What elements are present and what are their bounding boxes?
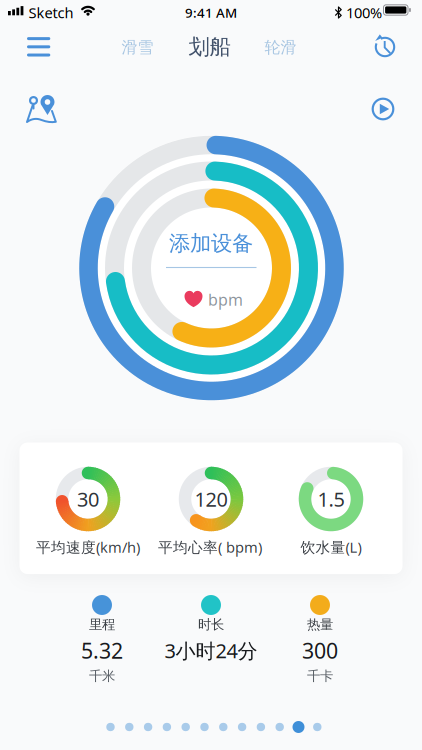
staticText: 轮滑 <box>264 38 296 57</box>
staticText: 饮水量(L) <box>300 537 361 557</box>
staticText: 滑雪 <box>121 38 153 57</box>
staticText: 平均心率( bpm) <box>158 537 262 557</box>
staticText: 300 <box>302 636 338 665</box>
staticText: 100% <box>346 3 382 22</box>
staticText: 3小时24分 <box>164 637 257 664</box>
staticText: 划船 <box>188 34 230 60</box>
staticText: 千米 <box>89 668 115 684</box>
staticText: bpm <box>208 289 243 310</box>
staticText: 平均速度(km/h) <box>36 537 140 557</box>
staticText: 1.5 <box>317 486 344 512</box>
staticText: 里程 <box>89 616 115 633</box>
staticText: 9:41 AM <box>185 4 237 21</box>
staticText: 5.32 <box>81 636 123 665</box>
staticText: 添加设备 <box>169 230 253 257</box>
staticText: 热量 <box>307 616 333 633</box>
staticText: 120 <box>194 486 227 512</box>
staticText: 千卡 <box>307 668 333 684</box>
staticText: Sketch <box>28 3 73 22</box>
staticText: 时长 <box>198 616 224 633</box>
staticText: 30 <box>77 486 99 512</box>
